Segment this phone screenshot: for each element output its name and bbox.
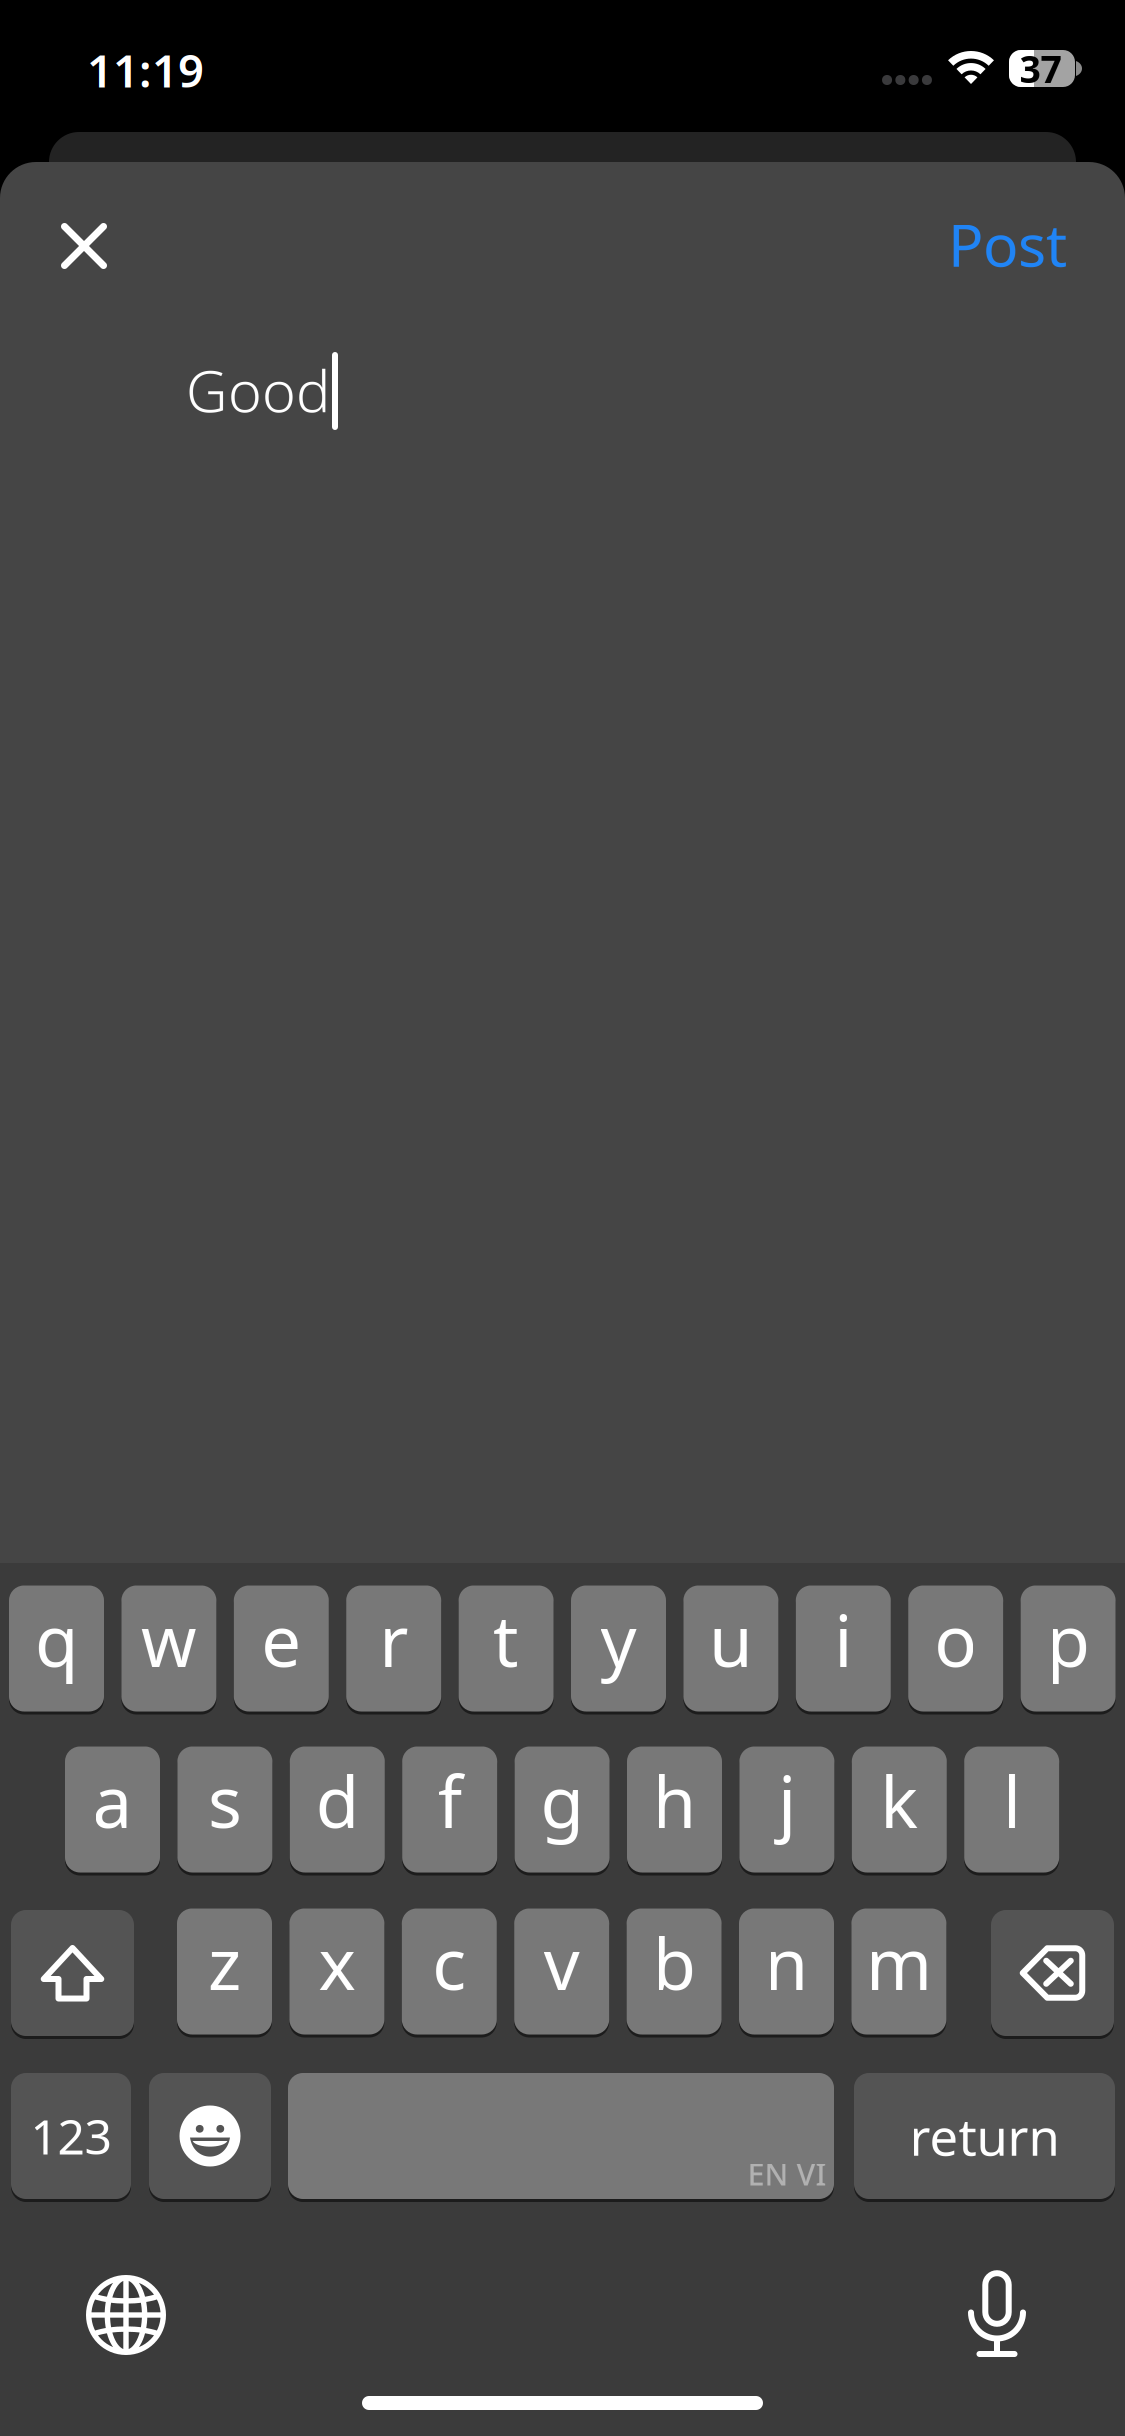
staticText: t: [493, 1593, 519, 1686]
staticText: g: [541, 1754, 584, 1847]
button[interactable]: q: [9, 1585, 104, 1714]
staticText: 11:19: [87, 40, 204, 100]
staticText: n: [764, 1916, 808, 2009]
staticText: l: [1003, 1754, 1021, 1847]
staticText: h: [652, 1754, 696, 1847]
button[interactable]: k: [852, 1746, 947, 1875]
button[interactable]: b: [627, 1908, 722, 2037]
staticText: j: [778, 1754, 796, 1847]
button[interactable]: z: [177, 1908, 272, 2037]
staticText: u: [709, 1593, 753, 1686]
button[interactable]: Dictate: [927, 2253, 1067, 2373]
button[interactable]: Numbers: [11, 2073, 131, 2202]
staticText: i: [834, 1593, 852, 1686]
button[interactable]: d: [290, 1746, 385, 1875]
button[interactable]: a: [65, 1746, 160, 1875]
button[interactable]: Next keyboard: [56, 2255, 196, 2375]
staticText: f: [438, 1754, 462, 1847]
staticText: v: [544, 1916, 580, 2009]
staticText: m: [866, 1916, 932, 2009]
staticText: r: [379, 1593, 408, 1686]
staticText: 123: [30, 2104, 111, 2168]
staticText: Good: [186, 352, 330, 428]
button[interactable]: Close: [29, 191, 139, 301]
button[interactable]: [854, 2073, 1115, 2202]
staticText: w: [141, 1593, 197, 1686]
button[interactable]: c: [402, 1908, 497, 2037]
button[interactable]: x: [289, 1908, 384, 2037]
staticText: z: [208, 1916, 241, 2009]
button[interactable]: u: [683, 1585, 778, 1714]
button[interactable]: j: [739, 1746, 834, 1875]
staticText: k: [880, 1754, 918, 1847]
button[interactable]: space: [288, 2073, 834, 2202]
button[interactable]: t: [459, 1585, 554, 1714]
staticText: Post: [948, 205, 1067, 283]
button[interactable]: f: [402, 1746, 497, 1875]
button[interactable]: Delete: [991, 1910, 1114, 2039]
button[interactable]: m: [851, 1908, 946, 2037]
staticText: return: [909, 2102, 1059, 2170]
button[interactable]: h: [627, 1746, 722, 1875]
staticText: e: [261, 1593, 301, 1686]
button[interactable]: v: [514, 1908, 609, 2037]
button[interactable]: r: [346, 1585, 441, 1714]
button[interactable]: i: [796, 1585, 891, 1714]
staticText: 37: [1019, 44, 1061, 93]
staticText: b: [653, 1916, 696, 2009]
staticText: EN VI: [747, 2153, 826, 2194]
staticText: x: [318, 1916, 355, 2009]
button[interactable]: s: [177, 1746, 272, 1875]
button[interactable]: Post: [917, 189, 1067, 299]
button[interactable]: l: [964, 1746, 1059, 1875]
button[interactable]: p: [1021, 1585, 1116, 1714]
button[interactable]: g: [515, 1746, 610, 1875]
button[interactable]: w: [121, 1585, 216, 1714]
button[interactable]: Emoji: [149, 2073, 271, 2202]
staticText: s: [208, 1754, 242, 1847]
staticText: d: [316, 1754, 359, 1847]
button[interactable]: e: [234, 1585, 329, 1714]
staticText: a: [92, 1754, 132, 1847]
staticText: p: [1047, 1593, 1090, 1686]
staticText: q: [35, 1593, 78, 1686]
button[interactable]: o: [908, 1585, 1003, 1714]
staticText: y: [600, 1593, 636, 1686]
staticText: c: [432, 1916, 466, 2009]
staticText: o: [934, 1593, 977, 1686]
button[interactable]: Shift: [11, 1910, 134, 2039]
button[interactable]: n: [739, 1908, 834, 2037]
button[interactable]: y: [571, 1585, 666, 1714]
